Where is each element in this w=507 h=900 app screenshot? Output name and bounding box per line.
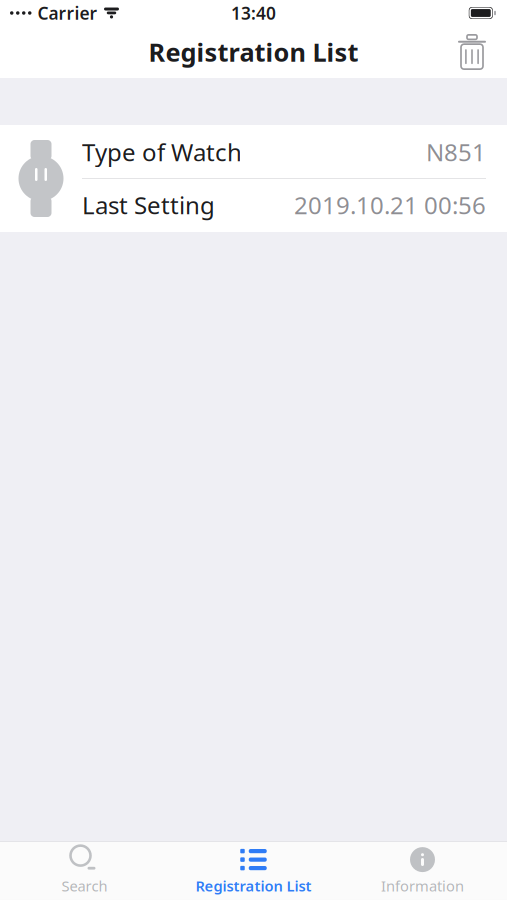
button[interactable]: Delete: [446, 26, 498, 78]
staticText: Registration List: [195, 876, 311, 896]
staticText: N851: [426, 136, 486, 168]
staticText: Search: [61, 876, 107, 896]
button[interactable]: Registration List: [169, 842, 338, 900]
staticText: Information: [381, 876, 464, 896]
button[interactable]: Information: [338, 842, 507, 900]
staticText: 13:40: [231, 1, 276, 24]
staticText: 2019.10.21 00:56: [294, 189, 486, 221]
staticText: Type of Watch: [82, 136, 242, 168]
staticText: Last Setting: [82, 189, 215, 221]
button[interactable]: Type of Watch: [0, 125, 507, 232]
staticText: Registration List: [148, 35, 358, 69]
button[interactable]: Search: [0, 842, 169, 900]
staticText: Carrier: [37, 1, 97, 24]
